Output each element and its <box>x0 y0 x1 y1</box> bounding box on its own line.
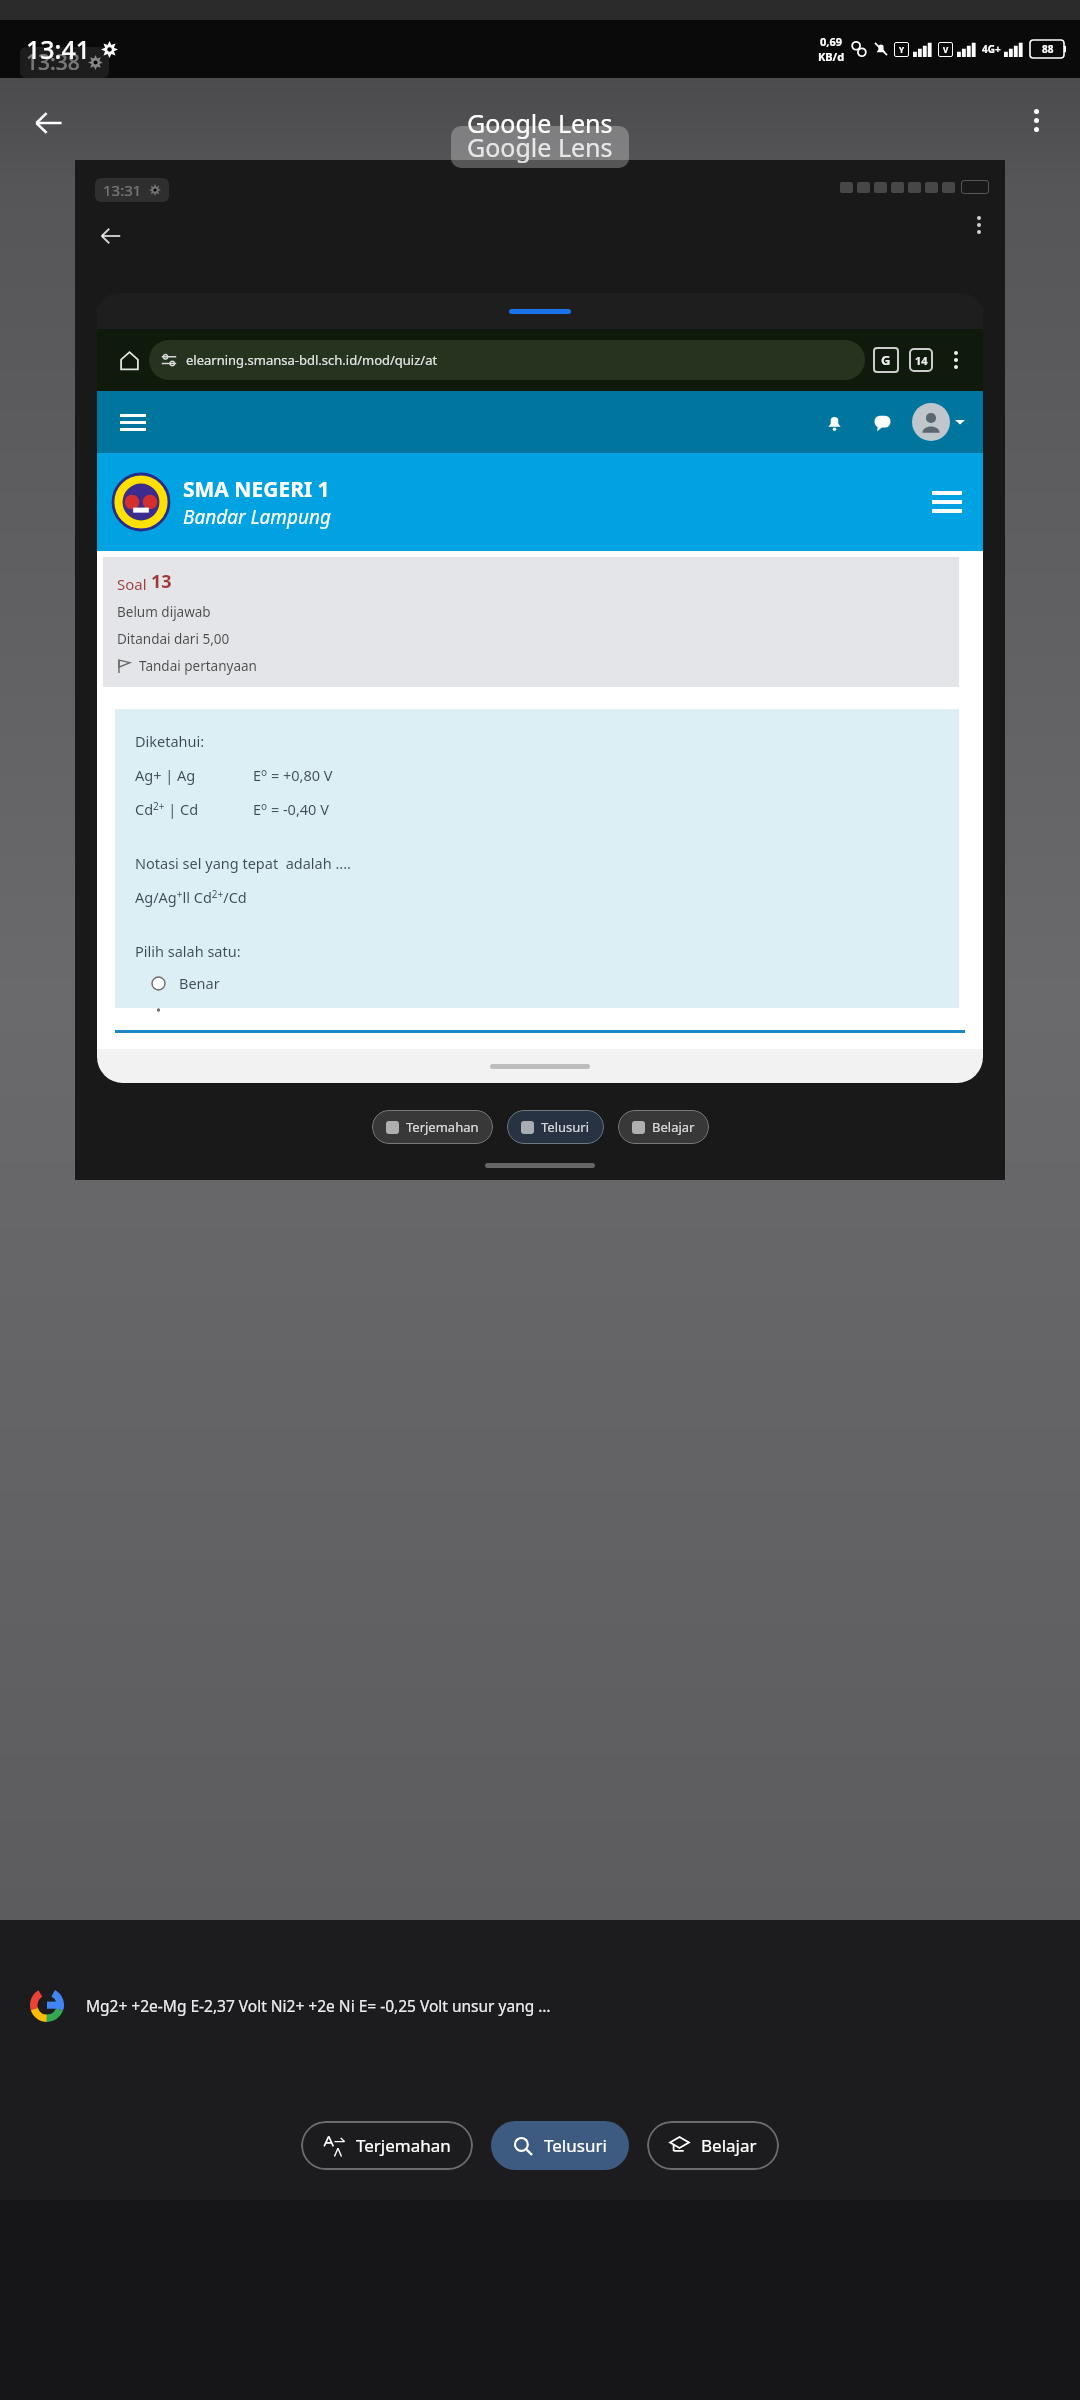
staticText: Terjemahan <box>406 1118 479 1136</box>
button[interactable]: Benar <box>135 971 228 995</box>
button[interactable]: Site menu <box>927 482 967 522</box>
staticText: Terjemahan <box>356 2134 451 2157</box>
staticText: Telusuri <box>541 1118 590 1136</box>
staticText: Pilih salah satu: <box>135 941 241 961</box>
staticText: SMA NEGERI 1 <box>183 475 330 504</box>
button[interactable]: More options <box>1012 96 1060 144</box>
button[interactable]: Telusuri <box>491 2121 629 2170</box>
button[interactable]: Messages <box>866 406 898 438</box>
staticText: Eo = -0,40 V <box>253 799 329 819</box>
staticText: Mg2+ +2e-Mg E-2,37 Volt Ni2+ +2e Ni E= -… <box>86 1995 551 2016</box>
staticText: Ag+ | Ag <box>135 765 196 785</box>
staticText: Google Lens <box>467 106 613 140</box>
button[interactable]: elearning.smansa-bdl.sch.id/mod/quiz/at <box>149 340 865 380</box>
staticText: Ag/Ag+ll Cd2+/Cd <box>135 887 247 907</box>
staticText: Y <box>899 44 905 55</box>
staticText: V <box>943 44 949 55</box>
staticText: 13:31 <box>103 180 142 200</box>
staticText: Belajar <box>701 2134 757 2157</box>
button[interactable]: Belajar <box>647 2121 779 2170</box>
staticText: G <box>881 351 891 369</box>
staticText: 88 <box>1042 42 1054 56</box>
button[interactable]: Terjemahan <box>301 2121 473 2170</box>
staticText: 14 <box>915 353 928 368</box>
button[interactable]: Profile <box>912 403 950 441</box>
staticText: Telusuri <box>544 2134 607 2157</box>
button[interactable]: Mg2+ +2e-Mg E-2,37 Volt Ni2+ +2e Ni E= -… <box>22 1980 1058 2030</box>
staticText: 13:41 <box>26 32 91 66</box>
staticText: Belajar <box>652 1118 695 1136</box>
staticText: KB/d <box>818 49 845 64</box>
staticText: 13 <box>151 569 172 594</box>
button[interactable]: Tandai pertanyaan <box>117 657 257 675</box>
button[interactable]: Home <box>109 340 149 380</box>
staticText: 4G+ <box>982 42 1001 56</box>
staticText: Tandai pertanyaan <box>139 657 257 675</box>
staticText: Notasi sel yang tepat adalah .... <box>135 853 352 873</box>
button[interactable]: Menu <box>115 404 151 440</box>
staticText: Soal <box>117 574 151 594</box>
staticText: 0,69 <box>820 34 843 49</box>
staticText: Eo = +0,80 V <box>253 765 333 785</box>
button[interactable]: Back <box>22 96 76 150</box>
staticText: 13:38 <box>26 48 80 77</box>
staticText: elearning.smansa-bdl.sch.id/mod/quiz/at <box>186 351 438 369</box>
staticText: Google Lens <box>467 130 613 164</box>
button[interactable]: More <box>941 345 971 375</box>
staticText: Ditandai dari 5,00 <box>117 630 230 648</box>
staticText: Belum dijawab <box>117 603 211 621</box>
button[interactable]: Notifications <box>818 406 850 438</box>
staticText: Bandar Lampung <box>183 504 331 530</box>
staticText: Benar <box>179 973 220 993</box>
staticText: Diketahui: <box>135 731 205 751</box>
staticText: Cd2+ | Cd <box>135 799 199 819</box>
